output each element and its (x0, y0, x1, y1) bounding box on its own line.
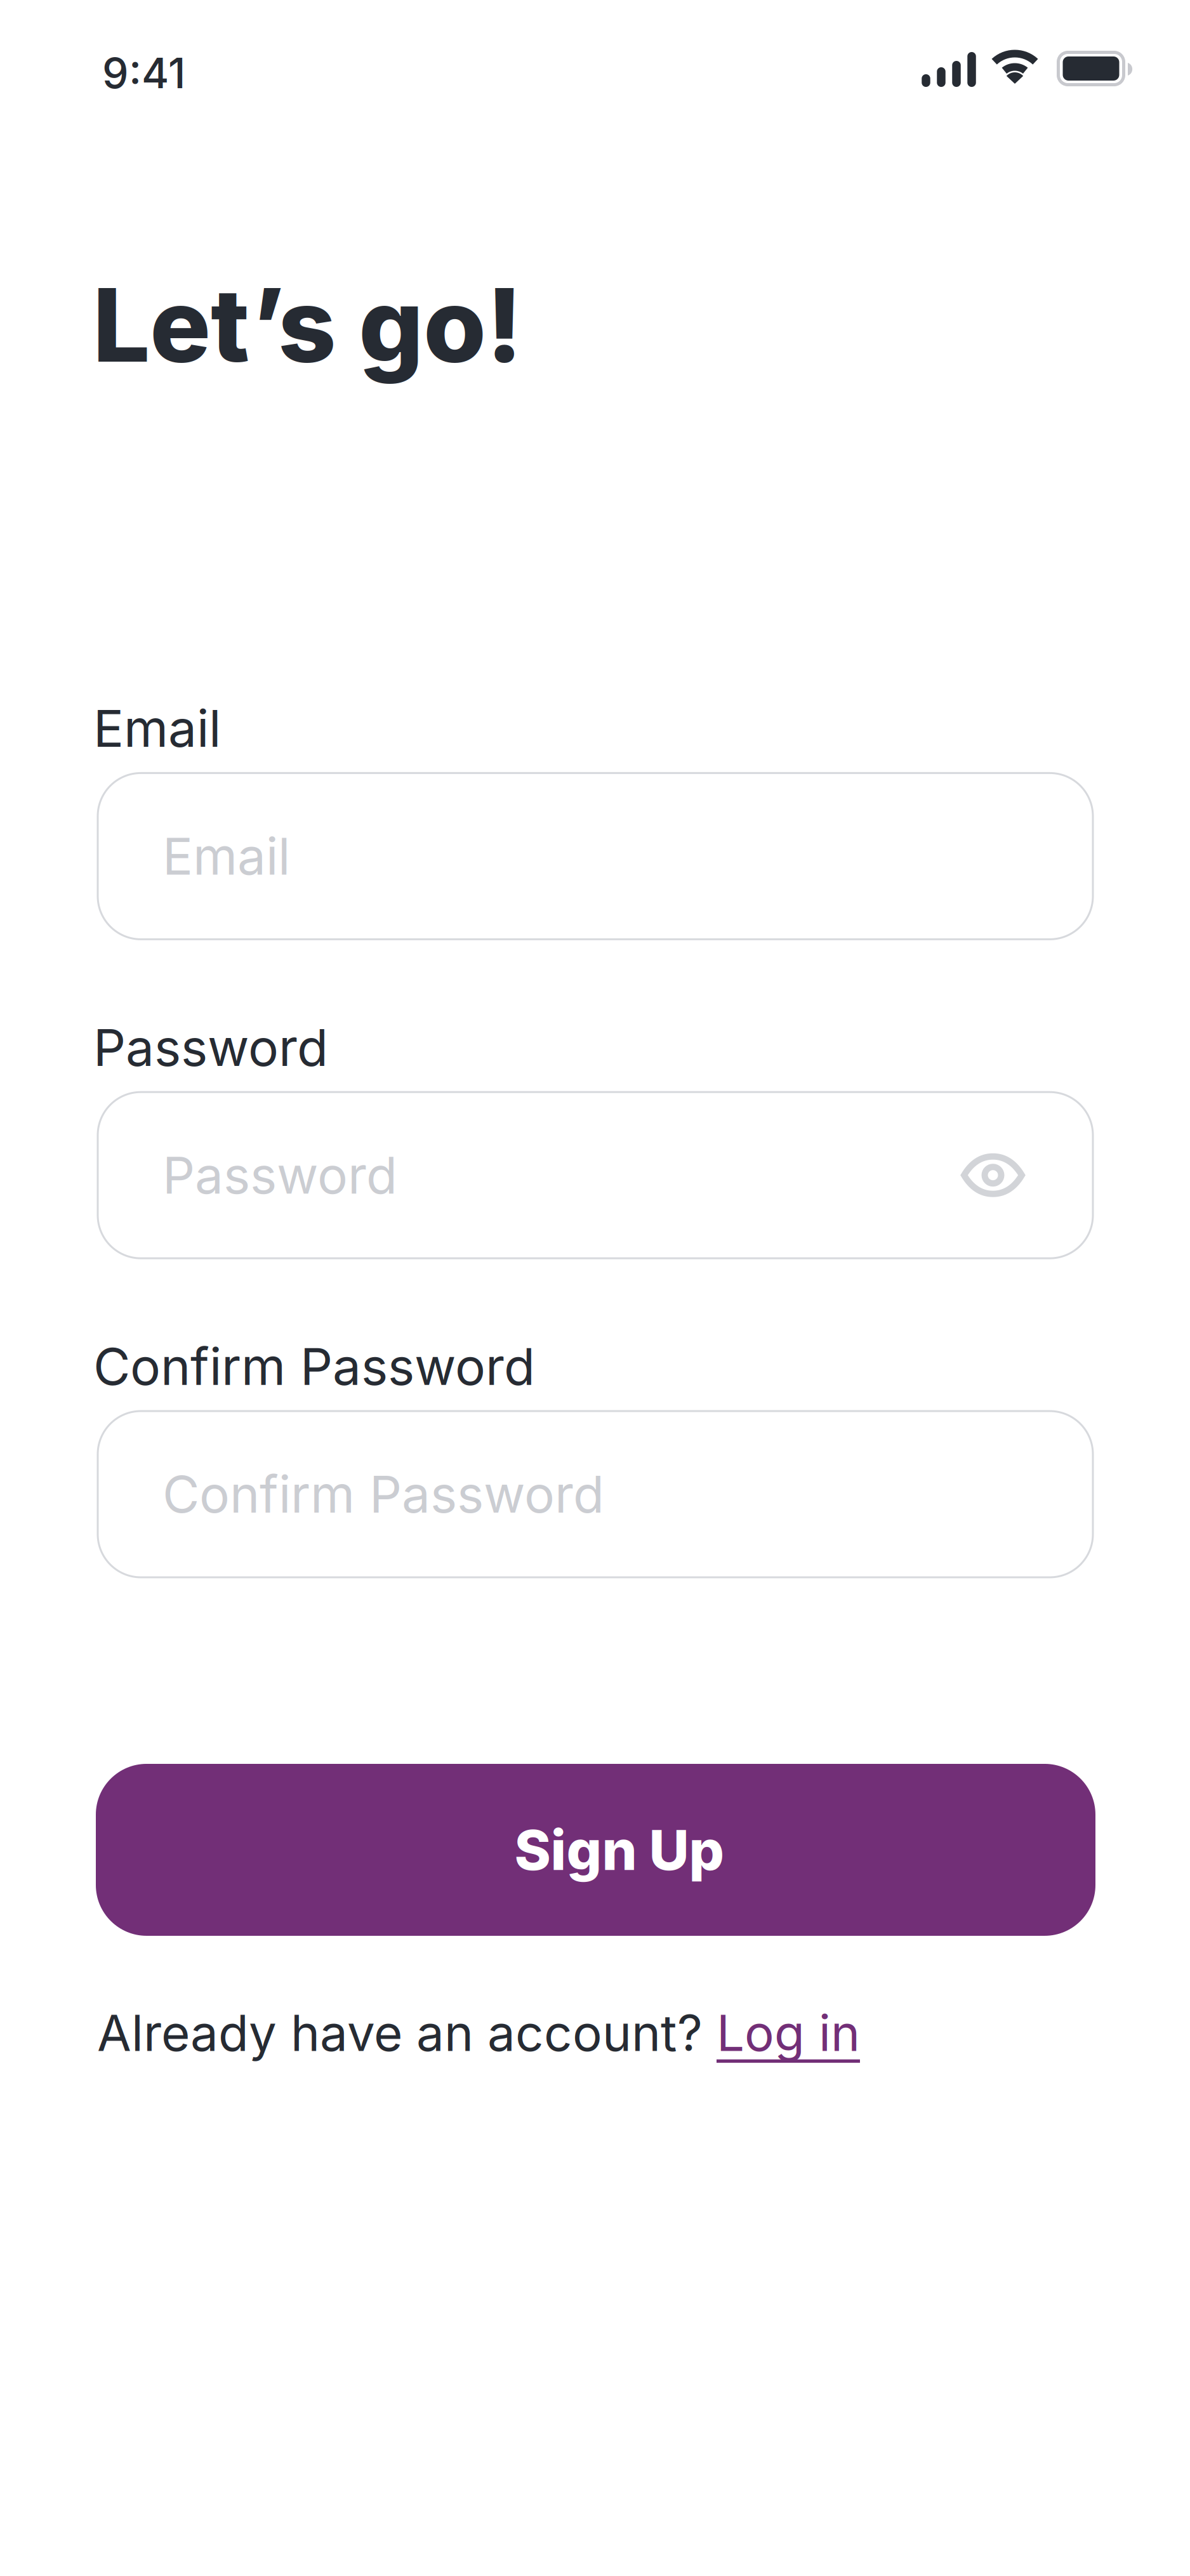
textField[interactable]: Email (98, 773, 1093, 939)
staticText: Password (162, 1144, 397, 1206)
staticText: Let’s go! (93, 263, 522, 386)
staticText: Password (93, 1017, 328, 1078)
secureTextField[interactable]: Confirm Password (98, 1411, 1093, 1577)
staticText: Confirm Password (162, 1463, 604, 1525)
staticText: Confirm Password (93, 1336, 535, 1397)
staticText: 9:41 (102, 48, 185, 98)
button[interactable]: Show password (961, 1153, 1025, 1197)
staticText: Email (93, 698, 221, 759)
staticText: Log in (717, 2003, 860, 2063)
button[interactable]: Log in (717, 2003, 860, 2063)
staticText: Already have an account? (97, 2003, 717, 2063)
secureTextField[interactable]: Password (98, 1092, 1093, 1258)
staticText: Sign Up (514, 1816, 724, 1883)
button[interactable]: Sign Up (96, 1764, 1095, 1936)
staticText: Email (162, 825, 290, 887)
